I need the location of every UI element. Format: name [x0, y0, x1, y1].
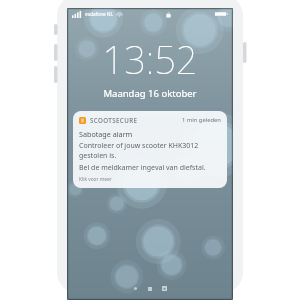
button[interactable]: Camera — [160, 284, 168, 292]
staticText: Controleer of jouw scooter KHK3012 gesto… — [79, 141, 221, 161]
staticText: Sabotage alarm — [79, 129, 133, 139]
staticText: vodafone NL — [85, 11, 113, 17]
staticText: Maandag 16 oktober — [67, 87, 233, 100]
staticText: Klik voor meer — [79, 176, 112, 183]
button[interactable]: Flashlight — [132, 285, 139, 292]
button[interactable]: Home — [146, 285, 153, 292]
button[interactable]: SCOOTSECURE — [73, 111, 227, 188]
staticText: Bel de meldkamer ingeval van diefstal. — [79, 163, 206, 173]
staticText: SCOOTSECURE — [90, 116, 138, 124]
staticText: 13:52 — [67, 33, 233, 85]
staticText: 1 min geleden — [182, 116, 221, 124]
